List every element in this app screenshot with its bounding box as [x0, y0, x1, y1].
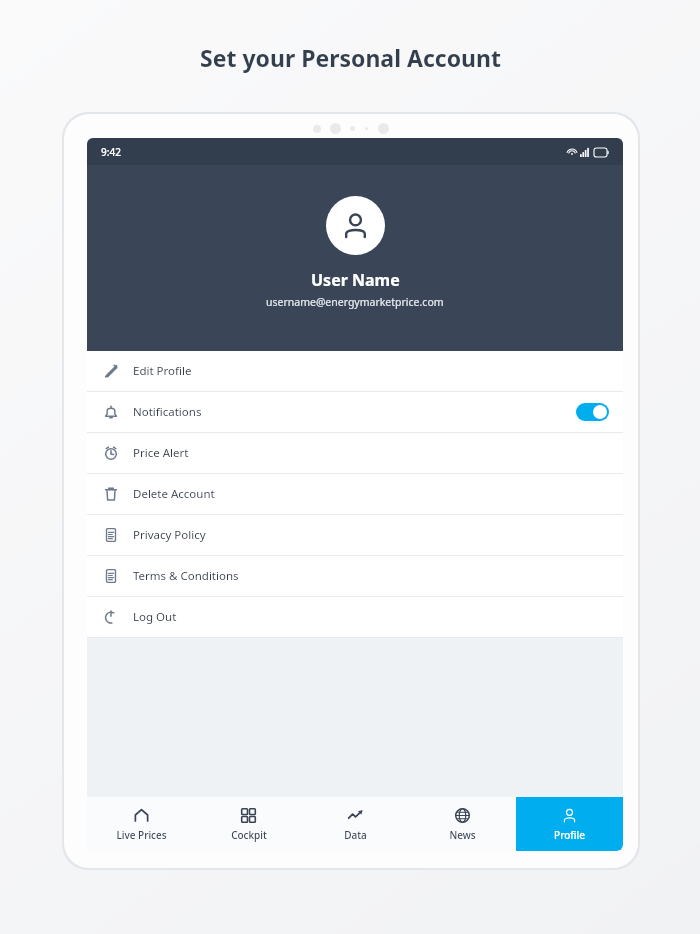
staticText: Cockpit — [231, 828, 267, 842]
button[interactable]: Profile — [516, 797, 623, 851]
button[interactable]: News — [409, 797, 516, 851]
staticText: Set your Personal Account — [200, 42, 501, 73]
button[interactable]: Cockpit — [195, 797, 302, 851]
button[interactable]: Delete Account — [87, 474, 623, 514]
button[interactable]: Log Out — [87, 597, 623, 637]
button[interactable]: Privacy Policy — [87, 515, 623, 555]
staticText: username@energymarketprice.com — [266, 295, 444, 309]
button[interactable]: Terms & Conditions — [87, 556, 623, 596]
button[interactable]: Edit Profile — [87, 351, 623, 391]
staticText: News — [449, 828, 476, 842]
staticText: Data — [344, 828, 367, 842]
staticText: Live Prices — [116, 828, 167, 842]
staticText: Price Alert — [133, 445, 189, 461]
staticText: Edit Profile — [133, 363, 192, 379]
button[interactable]: Notifications — [87, 392, 623, 432]
button[interactable]: Price Alert — [87, 433, 623, 473]
staticText: User Name — [311, 269, 400, 291]
button[interactable]: Data — [302, 797, 409, 851]
staticText: Profile — [554, 828, 585, 842]
staticText: Notifications — [133, 404, 202, 420]
button[interactable]: Notifications toggle — [576, 403, 609, 421]
staticText: Delete Account — [133, 486, 215, 502]
staticText: 9:42 — [101, 145, 121, 159]
button[interactable]: Live Prices — [87, 797, 195, 851]
staticText: Log Out — [133, 609, 177, 625]
staticText: Terms & Conditions — [133, 568, 239, 584]
staticText: Privacy Policy — [133, 527, 206, 543]
